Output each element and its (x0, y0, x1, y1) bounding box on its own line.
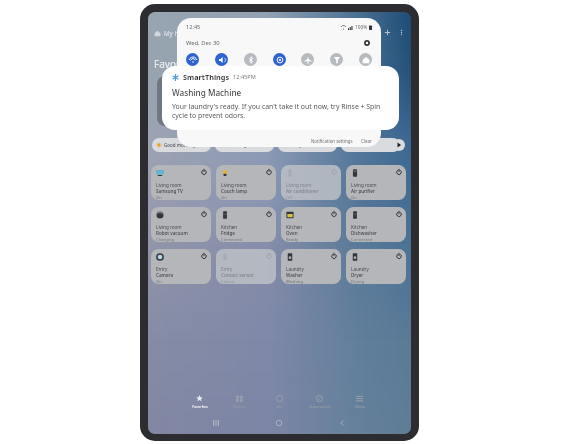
button[interactable]: Toggle power (265, 210, 273, 218)
staticText: Closed (221, 279, 235, 284)
staticText: Entry (156, 266, 168, 272)
staticText: Automations (309, 404, 331, 409)
button[interactable]: Kitchen (281, 207, 341, 242)
staticText: Menu (355, 404, 365, 409)
staticText: Kitchen (351, 224, 368, 230)
button[interactable]: Smart view (359, 53, 372, 66)
staticText: Good night (227, 142, 252, 148)
button[interactable]: Kitchen (216, 207, 276, 242)
button[interactable]: Back (335, 416, 348, 429)
button[interactable]: Away (278, 138, 337, 152)
button[interactable]: Home (151, 27, 163, 39)
staticText: Dishwasher (351, 230, 377, 236)
button[interactable]: Settings (362, 38, 372, 48)
staticText: 12:45 (186, 23, 201, 31)
button[interactable]: Automations (300, 394, 339, 409)
button[interactable]: Sound (215, 53, 228, 66)
button[interactable]: Living room (346, 165, 406, 200)
button[interactable]: Good morning (152, 138, 211, 152)
staticText: Samsung TV (156, 188, 183, 194)
button[interactable]: Movie (341, 138, 400, 152)
button[interactable]: Next (393, 139, 405, 151)
staticText: Off (286, 195, 293, 200)
button[interactable]: Notification settings (311, 138, 353, 144)
staticText: Living room (156, 224, 182, 230)
staticText: Washing (286, 279, 303, 284)
button[interactable]: Toggle power (330, 168, 338, 176)
button[interactable]: Living room (151, 165, 211, 200)
button[interactable]: Menu (340, 394, 379, 409)
staticText: Air purifier (351, 188, 375, 194)
staticText: Laundry (351, 266, 369, 272)
staticText: Away (290, 142, 302, 148)
button[interactable]: Toggle power (395, 252, 403, 260)
staticText: On (156, 279, 162, 284)
button[interactable]: Add (381, 26, 394, 39)
button[interactable]: Toggle power (200, 252, 208, 260)
staticText: On (156, 195, 162, 200)
staticText: SmartThings (183, 72, 230, 82)
staticText: Living room (221, 182, 247, 188)
button[interactable]: Life (260, 394, 299, 409)
button[interactable]: Wi-Fi (186, 53, 199, 66)
staticText: Favorites (154, 57, 197, 71)
button[interactable]: Toggle power (200, 168, 208, 176)
staticText: Fridge (221, 230, 235, 236)
button[interactable]: Home (272, 416, 285, 429)
staticText: Dryer (351, 272, 364, 278)
staticText: 100% (355, 24, 368, 31)
staticText: Devices (233, 404, 246, 409)
staticText: Connected (221, 237, 243, 242)
button[interactable]: Kitchen (346, 207, 406, 242)
button[interactable]: Recents (209, 416, 222, 429)
button[interactable]: Laundry (281, 249, 341, 284)
staticText: Washer (286, 272, 303, 278)
staticText: Washing Machine (172, 87, 242, 98)
button[interactable]: Toggle power (330, 210, 338, 218)
staticText: Oven (286, 230, 298, 236)
staticText: Robot vacuum (156, 230, 188, 236)
button[interactable]: Toggle power (265, 252, 273, 260)
staticText: Wed, Dec 30 (186, 39, 220, 47)
button[interactable]: Living room (281, 165, 341, 200)
staticText: 12:45PM (233, 73, 256, 81)
button[interactable]: Favorites (180, 394, 219, 409)
staticText: Drying (351, 279, 365, 284)
staticText: Contact sensor (221, 272, 254, 278)
button[interactable]: Toggle power (395, 210, 403, 218)
button[interactable]: More options (395, 26, 408, 39)
staticText: Connected (351, 237, 373, 242)
button[interactable]: SmartThings (162, 66, 399, 130)
staticText: Life (276, 404, 283, 409)
button[interactable]: Airplane mode (301, 53, 314, 66)
staticText: Couch lamp (221, 188, 248, 194)
button[interactable]: Devices (220, 394, 259, 409)
staticText: Laundry (286, 266, 304, 272)
staticText: My home (164, 29, 192, 37)
button[interactable]: Toggle power (200, 210, 208, 218)
staticText: Charging (156, 237, 175, 242)
staticText: Living room (351, 182, 377, 188)
staticText: Living room (286, 182, 312, 188)
button[interactable]: Living room (151, 207, 211, 242)
staticText: On (351, 195, 357, 200)
staticText: Ready (286, 237, 299, 242)
button[interactable]: Laundry (346, 249, 406, 284)
button[interactable]: Entry (151, 249, 211, 284)
staticText: On (221, 195, 227, 200)
button[interactable]: Living room (216, 165, 276, 200)
staticText: Your laundry's ready. If you can't take … (172, 102, 383, 120)
button[interactable]: Clear (361, 138, 372, 144)
staticText: Good morning (164, 142, 196, 148)
button[interactable]: Toggle power (265, 168, 273, 176)
button[interactable]: Toggle power (395, 168, 403, 176)
button[interactable]: Toggle power (330, 252, 338, 260)
button[interactable]: Auto rotate (273, 53, 286, 66)
button[interactable]: Flashlight (330, 53, 343, 66)
button[interactable]: Good night (215, 138, 274, 152)
button[interactable]: Bluetooth (244, 53, 257, 66)
staticText: Living room (156, 182, 182, 188)
staticText: Camera (156, 272, 174, 278)
staticText: Kitchen (221, 224, 238, 230)
button[interactable]: Entry (216, 249, 276, 284)
